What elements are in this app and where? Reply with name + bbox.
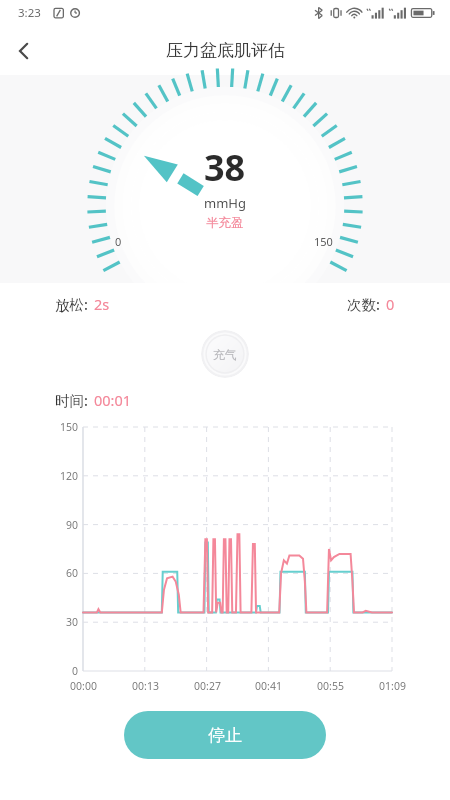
staticText: 01:09 bbox=[379, 679, 406, 693]
staticText: 00:27 bbox=[194, 679, 221, 693]
staticText: 60 bbox=[65, 566, 78, 580]
staticText: 90 bbox=[65, 518, 78, 532]
staticText: 充气 bbox=[213, 347, 237, 362]
staticText: 00:55 bbox=[317, 679, 344, 693]
staticText: 半充盈 bbox=[206, 215, 244, 231]
button[interactable]: 停止 bbox=[124, 711, 326, 759]
staticText: 2s bbox=[94, 294, 110, 314]
staticText: 停止 bbox=[208, 725, 242, 746]
staticText: 0 bbox=[386, 294, 395, 314]
staticText: 次数: bbox=[347, 294, 380, 314]
staticText: 150 bbox=[59, 420, 78, 434]
staticText: 00:01 bbox=[94, 390, 132, 410]
button[interactable]: 充气 bbox=[201, 330, 249, 378]
staticText: 120 bbox=[59, 469, 78, 483]
staticText: 00:13 bbox=[132, 679, 159, 693]
staticText: 150 bbox=[314, 234, 333, 249]
staticText: 压力盆底肌评估 bbox=[166, 40, 285, 61]
staticText: 00:41 bbox=[255, 679, 282, 693]
staticText: 0 bbox=[71, 664, 78, 678]
staticText: 38 bbox=[204, 143, 246, 192]
staticText: 0 bbox=[115, 234, 122, 249]
staticText: 3:23 bbox=[18, 5, 41, 21]
staticText: 00:00 bbox=[70, 679, 97, 693]
staticText: mmHg bbox=[204, 194, 246, 212]
button[interactable]: Back bbox=[0, 27, 48, 75]
staticText: 放松: bbox=[55, 294, 88, 314]
staticText: 时间: bbox=[55, 390, 88, 410]
staticText: 30 bbox=[65, 615, 78, 629]
